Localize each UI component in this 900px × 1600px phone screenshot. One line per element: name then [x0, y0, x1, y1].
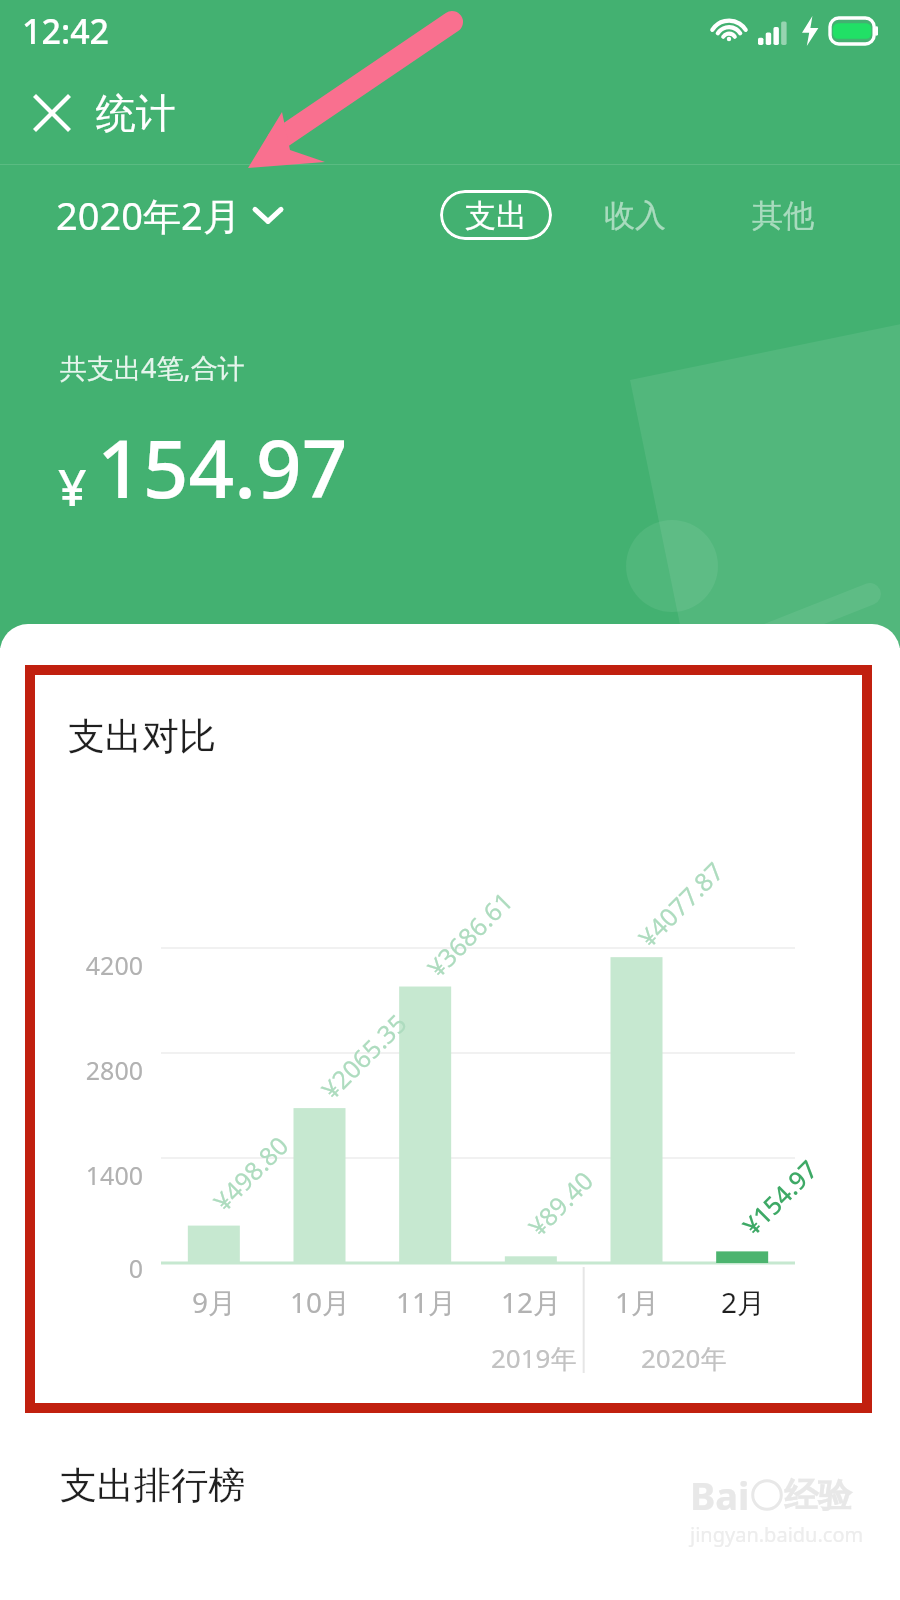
button[interactable]: 支出排行榜	[60, 1462, 245, 1509]
staticText: jingyan.baidu.com	[690, 1521, 864, 1548]
staticText: 2019年	[491, 1340, 577, 1376]
staticText: 2020年	[641, 1340, 727, 1376]
staticText: ¥2065.35	[314, 1006, 413, 1106]
staticText: 支出	[465, 196, 527, 235]
staticText: 经验	[784, 1474, 852, 1517]
staticText: 1400	[65, 1158, 143, 1192]
staticText: 2020年2月	[56, 189, 241, 241]
button[interactable]: Close	[22, 83, 82, 143]
staticText: 154.97	[97, 412, 348, 521]
staticText: 4200	[65, 948, 143, 982]
staticText: 12:42	[22, 8, 110, 54]
staticText: ¥4077.87	[631, 854, 730, 954]
staticText: 支出对比	[68, 713, 216, 760]
staticText: 1月	[615, 1283, 660, 1321]
staticText: 12月	[501, 1283, 562, 1321]
staticText: ¥154.97	[735, 1152, 824, 1242]
button[interactable]: 其他	[752, 196, 814, 235]
staticText: 9月	[192, 1283, 237, 1321]
staticText: 11月	[396, 1283, 457, 1321]
staticText: ¥498.80	[206, 1128, 295, 1218]
staticText: 2月	[721, 1283, 766, 1321]
button[interactable]: 支出	[440, 190, 552, 240]
staticText: 共支出4笔,合计	[60, 349, 245, 386]
staticText: 统计	[96, 88, 176, 138]
button[interactable]: 收入	[604, 196, 666, 235]
staticText: 2800	[65, 1053, 143, 1087]
staticText: 10月	[290, 1283, 351, 1321]
staticText: ¥89.40	[520, 1163, 600, 1243]
staticText: ¥	[58, 453, 87, 521]
button[interactable]: 2020年2月	[56, 189, 281, 241]
staticText: ¥3686.61	[420, 884, 519, 984]
staticText: 0	[65, 1251, 143, 1285]
staticText: Bai	[690, 1469, 750, 1521]
